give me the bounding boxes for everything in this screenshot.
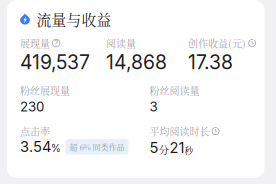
staticText: 419,537	[20, 51, 90, 74]
staticText: ?	[54, 38, 58, 48]
staticText: 17.38	[188, 51, 233, 74]
staticText: 超 6% 同类作品	[69, 141, 124, 152]
staticText: 230	[20, 98, 44, 115]
staticText: 3	[149, 98, 157, 115]
staticText: 平均阅读时长	[149, 124, 209, 138]
staticText: 3.54%	[20, 138, 61, 155]
staticText: 点击率	[20, 124, 50, 138]
staticText: 展现量	[20, 36, 50, 50]
staticText: 14,868	[106, 51, 167, 74]
staticText: 粉丝展现量	[20, 83, 70, 98]
staticText: 5分21秒	[149, 139, 193, 157]
staticText: 流量与收益	[36, 8, 111, 30]
staticText: 阅读量	[106, 36, 136, 50]
staticText: 创作收益(元)	[188, 36, 246, 50]
staticText: 粉丝阅读量	[149, 83, 199, 98]
